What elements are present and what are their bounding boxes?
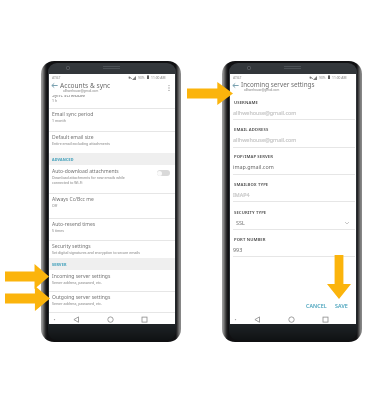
button[interactable]: Navigate up	[50, 81, 59, 90]
staticText: Sync schedule	[52, 95, 86, 99]
staticText: Set digital signatures and encryption to…	[52, 250, 140, 255]
staticText: 90%	[319, 75, 326, 79]
button[interactable]: Sync schedule	[49, 95, 175, 107]
staticText: 11:00 AM	[332, 75, 347, 79]
button[interactable]: More options	[165, 84, 173, 92]
staticText: IMAP4	[233, 191, 250, 198]
button[interactable]: USERNAME	[230, 100, 356, 120]
button[interactable]: Navigate up	[231, 81, 240, 90]
staticText: SERVER	[52, 262, 67, 267]
staticText: Always Cc/Bcc me	[52, 196, 94, 203]
staticText: SMAILBOX TYPE	[234, 182, 269, 188]
staticText: imap.gmail.com	[233, 163, 274, 170]
staticText: POP/IMAP SERVER	[234, 154, 274, 160]
staticText: 90%	[138, 75, 145, 79]
staticText: 11:00 AM	[151, 75, 166, 79]
staticText: Server address, password, etc.	[52, 301, 102, 306]
button[interactable]: CANCEL	[303, 300, 329, 310]
button[interactable]: Incoming server settings	[49, 270, 175, 291]
staticText: Off	[52, 203, 58, 208]
staticText: Download attachments for new emails whil…	[52, 175, 125, 185]
staticText: allhwehouse@gmail.com	[233, 136, 297, 143]
button[interactable]: SECURITY TYPE	[230, 210, 356, 230]
button[interactable]: SAVE	[332, 300, 350, 310]
staticText: Incoming server settings	[52, 273, 111, 280]
staticText: 1 h	[52, 98, 58, 103]
staticText: Server address, password, etc.	[52, 280, 102, 285]
staticText: 993	[233, 246, 243, 253]
staticText: Email sync period	[52, 111, 94, 118]
button[interactable]: Auto-download attachments	[49, 165, 175, 193]
staticText: Security settings	[52, 243, 91, 250]
staticText: Auto-download attachments	[52, 168, 119, 175]
staticText: allhwehouse@gmail.com	[244, 88, 280, 92]
staticText: 5 times	[52, 228, 65, 233]
staticText: Default email size	[52, 134, 94, 141]
button[interactable]: POP/IMAP SERVER	[230, 154, 356, 174]
button[interactable]: PORT NUMBER	[230, 237, 356, 257]
staticText: ADVANCED	[52, 157, 74, 162]
button[interactable]: Security settings	[49, 240, 175, 258]
staticText: 1 month	[52, 118, 66, 123]
staticText: CANCEL	[306, 302, 327, 309]
button[interactable]: Auto-resend times	[49, 218, 175, 240]
staticText: USERNAME	[234, 100, 258, 106]
staticText: EMAIL ADDRESS	[234, 127, 269, 133]
button[interactable]: Default email size	[49, 131, 175, 153]
button[interactable]: Email sync period	[49, 108, 175, 132]
staticText: Incoming server settings	[241, 80, 315, 89]
button[interactable]: Outgoing server settings	[49, 291, 175, 313]
staticText: PORT NUMBER	[234, 237, 266, 243]
button[interactable]: EMAIL ADDRESS	[230, 127, 356, 147]
staticText: allhwehouse@gmail.com	[233, 109, 297, 116]
staticText: AT&T	[52, 75, 61, 80]
staticText: Outgoing server settings	[52, 294, 111, 301]
staticText: SSL	[236, 219, 245, 226]
staticText: Auto-resend times	[52, 221, 96, 228]
staticText: Entire email excluding attachments	[52, 141, 110, 146]
staticText: SAVE	[335, 302, 348, 309]
staticText: allhwehouse@gmail.com	[63, 89, 99, 93]
staticText: AT&T	[233, 75, 242, 80]
button[interactable]: Always Cc/Bcc me	[49, 193, 175, 218]
staticText: SECURITY TYPE	[234, 210, 267, 216]
button[interactable]: SMAILBOX TYPE	[230, 182, 356, 202]
staticText: Accounts & sync	[60, 81, 111, 90]
